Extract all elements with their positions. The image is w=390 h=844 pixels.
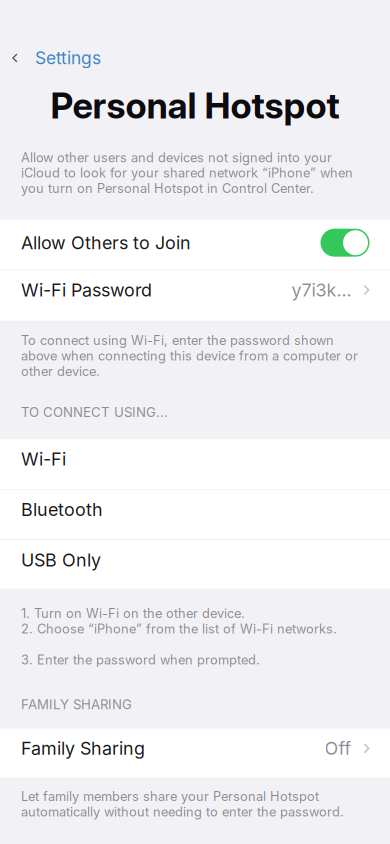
staticText: y7i3k...: [291, 279, 351, 301]
staticText: Personal Hotspot: [50, 84, 339, 127]
staticText: Off: [324, 738, 351, 759]
button[interactable]: Wi-Fi: [0, 439, 390, 489]
button[interactable]: Allow Others to Join: [0, 220, 390, 270]
staticText: To connect using Wi-Fi, enter the passwo…: [21, 333, 358, 379]
button[interactable]: USB Only: [0, 540, 390, 589]
staticText: Let family members share your Personal H…: [21, 789, 344, 820]
staticText: Wi-Fi: [21, 448, 66, 470]
button[interactable]: Settings: [0, 44, 111, 72]
staticText: Settings: [35, 47, 101, 68]
staticText: Wi-Fi Password: [21, 279, 152, 301]
staticText: Allow other users and devices not signed…: [21, 150, 353, 196]
staticText: USB Only: [21, 549, 101, 571]
staticText: Family Sharing: [21, 738, 145, 759]
staticText: 1. Turn on Wi-Fi on the other device. 2.…: [21, 606, 337, 667]
staticText: Allow Others to Join: [21, 232, 191, 253]
staticText: FAMILY SHARING: [21, 697, 132, 713]
staticText: Bluetooth: [21, 499, 103, 520]
button[interactable]: Family Sharing: [0, 729, 390, 778]
staticText: TO CONNECT USING...: [21, 404, 168, 420]
button[interactable]: Bluetooth: [0, 490, 390, 540]
button[interactable]: Wi-Fi Password: [0, 270, 390, 321]
